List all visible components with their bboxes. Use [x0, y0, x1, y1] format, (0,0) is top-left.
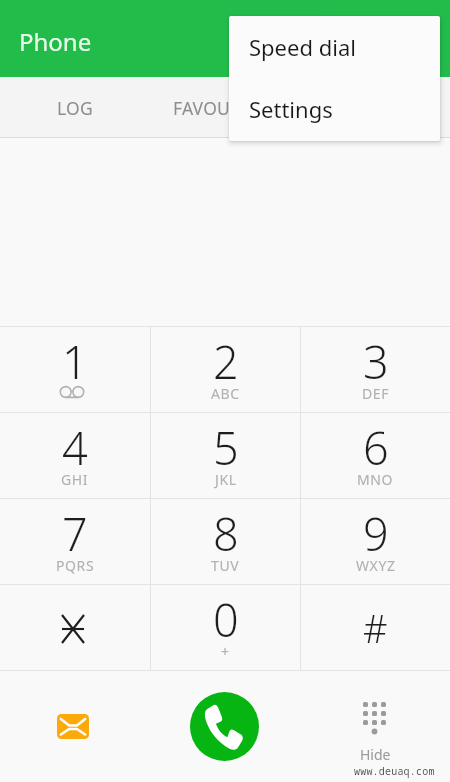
staticText: # — [363, 602, 388, 654]
staticText: CONTACTS — [330, 96, 420, 120]
staticText: PQRS — [56, 556, 95, 575]
staticText: Hide — [360, 745, 391, 764]
staticText: 1 — [62, 331, 88, 392]
button[interactable]: FAVOURITES — [150, 77, 300, 138]
staticText: ABC — [211, 384, 240, 403]
staticText: LOG — [57, 96, 93, 120]
staticText: www.deuaq.com — [354, 764, 435, 778]
button[interactable]: 9 — [301, 499, 450, 584]
button[interactable]: 3 — [301, 327, 450, 412]
staticText: 0 — [213, 589, 239, 650]
staticText: JKL — [215, 470, 237, 489]
staticText: DEF — [362, 384, 390, 403]
button[interactable]: 6 — [301, 413, 450, 498]
staticText: 8 — [213, 503, 239, 564]
button[interactable]: 8 — [151, 499, 300, 584]
staticText: WXYZ — [356, 556, 396, 575]
staticText: Speed dial — [249, 32, 356, 62]
staticText: 4 — [62, 417, 88, 478]
button[interactable] — [0, 585, 150, 670]
button[interactable]: 4 — [0, 413, 150, 498]
staticText: 9 — [363, 503, 389, 564]
staticText: FAVOURITES — [173, 96, 277, 120]
staticText: 2 — [213, 331, 239, 392]
staticText: TUV — [211, 556, 240, 575]
staticText: 6 — [363, 417, 389, 478]
button[interactable]: Send message — [0, 671, 150, 782]
button[interactable]: 0 — [151, 585, 300, 670]
button[interactable]: LOG — [0, 77, 150, 138]
button[interactable]: 5 — [151, 413, 300, 498]
button[interactable]: Hide — [300, 671, 450, 782]
button[interactable]: # — [301, 585, 450, 670]
button[interactable]: Speed dial — [229, 16, 440, 77]
button[interactable]: 7 — [0, 499, 150, 584]
button[interactable]: Settings — [229, 77, 440, 141]
button[interactable]: 1 — [0, 327, 150, 412]
staticText: GHI — [61, 470, 89, 489]
staticText: 7 — [62, 503, 88, 564]
button[interactable]: CONTACTS — [300, 77, 450, 138]
staticText: 3 — [363, 331, 389, 392]
staticText: + — [221, 642, 230, 661]
staticText: MNO — [357, 470, 394, 489]
staticText: Phone — [19, 25, 92, 58]
staticText: Settings — [249, 94, 333, 124]
staticText: 5 — [213, 417, 239, 478]
button[interactable]: Call — [150, 671, 300, 782]
button[interactable]: 2 — [151, 327, 300, 412]
